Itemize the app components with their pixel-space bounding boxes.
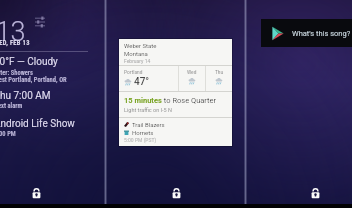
button[interactable]: Unlock [30,187,43,200]
staticText: 50°F — Cloudy [0,56,58,68]
staticText: 5:00 PM [0,130,16,138]
staticText: Light traffic on I-5 N [124,107,172,113]
staticText: Trail Blazers [132,121,165,128]
staticText: Later: Showers [0,69,33,77]
staticText: Android Life Show [0,118,75,130]
staticText: What's this song? [292,29,351,38]
staticText: Thu 7:00 AM [0,90,51,102]
staticText: WED, FEB 13 [0,39,30,47]
staticText: 5:00 PM (PST) [124,137,157,143]
other: Sound settings [35,17,45,27]
staticText: 47° [134,76,150,88]
staticText: West Portland, Portland, OR [0,76,67,84]
staticText: Thu [215,69,224,75]
staticText: Weber State [124,42,157,49]
staticText: to Rose Quarter [162,96,217,105]
staticText: Next alarm [0,102,23,110]
staticText: Wed [187,69,197,75]
staticText: 1:13 [0,16,26,48]
button[interactable]: Unlock [309,187,322,200]
staticText: February 14 [124,58,151,64]
staticText: Hornets [132,129,154,136]
button[interactable]: Unlock [170,187,183,200]
button[interactable]: What's this song? [261,19,352,47]
staticText: Portland [124,69,143,75]
button[interactable]: Weber State [119,39,232,146]
staticText: Montana [124,50,148,57]
staticText: 15 minutes [124,96,162,105]
